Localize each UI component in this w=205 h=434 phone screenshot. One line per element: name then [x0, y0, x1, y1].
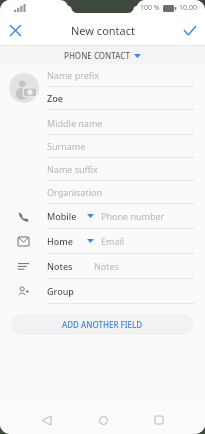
staticText: 10.00: [179, 3, 197, 13]
button[interactable]: ADD ANOTHER FIELD: [11, 314, 194, 335]
staticText: Email: [101, 235, 125, 247]
button[interactable]: Notes: [0, 254, 205, 279]
staticText: Group: [47, 285, 74, 297]
staticText: Notes: [47, 260, 73, 272]
staticText: Organisation: [47, 186, 103, 198]
button[interactable]: PHONE CONTACT: [0, 46, 205, 64]
button[interactable]: Middle name: [47, 112, 195, 135]
staticText: ADD ANOTHER FIELD: [62, 319, 143, 330]
staticText: Name prefix: [47, 69, 100, 81]
button[interactable]: Save: [175, 16, 205, 45]
button[interactable]: Name suffix: [47, 158, 195, 181]
button[interactable]: Home: [91, 408, 115, 432]
staticText: Phone number: [101, 210, 165, 222]
staticText: Mobile: [47, 210, 77, 222]
staticText: New contact: [71, 23, 135, 38]
button[interactable]: Recents: [147, 408, 171, 432]
staticText: Surname: [47, 140, 86, 152]
staticText: Zoe: [47, 92, 63, 104]
button[interactable]: Organisation: [47, 181, 195, 204]
staticText: Name suffix: [47, 163, 98, 175]
staticText: PHONE CONTACT: [64, 50, 130, 61]
button[interactable]: Surname: [47, 135, 195, 158]
staticText: Middle name: [47, 117, 103, 129]
button[interactable]: Email: [0, 229, 205, 254]
button[interactable]: Name prefix: [47, 64, 195, 87]
button[interactable]: Phone: [0, 204, 205, 229]
button[interactable]: Cancel: [0, 16, 30, 45]
button[interactable]: Group: [0, 279, 205, 304]
staticText: Home: [47, 235, 73, 247]
button[interactable]: Zoe: [47, 87, 195, 110]
staticText: 100 %: [140, 3, 160, 13]
button[interactable]: Back: [34, 408, 58, 432]
button[interactable]: Add photo: [0, 64, 47, 112]
staticText: Notes: [94, 260, 119, 272]
